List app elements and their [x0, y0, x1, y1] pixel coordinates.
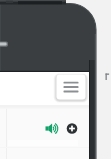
button[interactable]: Sound	[44, 121, 61, 136]
button[interactable]: Open navigation menu	[56, 74, 85, 99]
button[interactable]: Add	[66, 122, 78, 134]
